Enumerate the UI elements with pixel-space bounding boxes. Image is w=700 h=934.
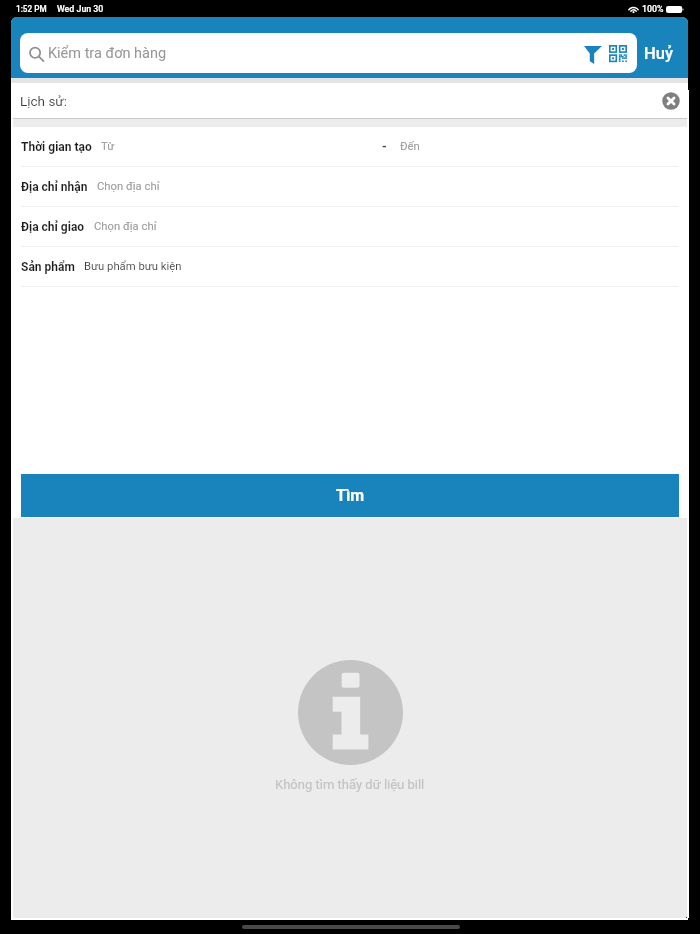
staticText: Chọn địa chỉ (97, 180, 160, 193)
button[interactable]: Sản phẩm (11, 247, 688, 287)
button[interactable]: Clear history (659, 89, 683, 113)
staticText: Lịch sử: (20, 93, 67, 109)
button[interactable]: Địa chỉ giao (11, 207, 688, 247)
staticText: 1:52 PM (16, 4, 47, 14)
staticText: Không tìm thấy dữ liệu bill (275, 777, 425, 792)
staticText: Địa chỉ nhận (21, 180, 88, 194)
staticText: Sản phẩm (21, 260, 75, 274)
staticText: Huỷ (644, 44, 673, 63)
staticText: 100% (642, 4, 664, 14)
staticText: Địa chỉ giao (21, 220, 85, 234)
button[interactable]: Kiểm tra đơn hàng (20, 33, 637, 73)
staticText: Chọn địa chỉ (94, 220, 157, 233)
staticText: Đến (400, 140, 420, 153)
staticText: Từ (101, 140, 115, 153)
staticText: Kiểm tra đơn hàng (48, 45, 167, 62)
staticText: - (382, 140, 387, 154)
button[interactable]: Tìm (21, 474, 679, 517)
staticText: Thời gian tạo (21, 140, 92, 154)
button[interactable]: Thời gian tạo (11, 127, 688, 167)
staticText: Bưu phẩm bưu kiện (84, 260, 182, 273)
staticText: Wed Jun 30 (57, 4, 104, 14)
button[interactable]: Filter (578, 38, 604, 68)
button[interactable]: Scan QR code (605, 38, 631, 68)
button[interactable]: Địa chỉ nhận (11, 167, 688, 207)
button[interactable]: Huỷ (637, 33, 687, 73)
staticText: Tìm (336, 486, 365, 505)
